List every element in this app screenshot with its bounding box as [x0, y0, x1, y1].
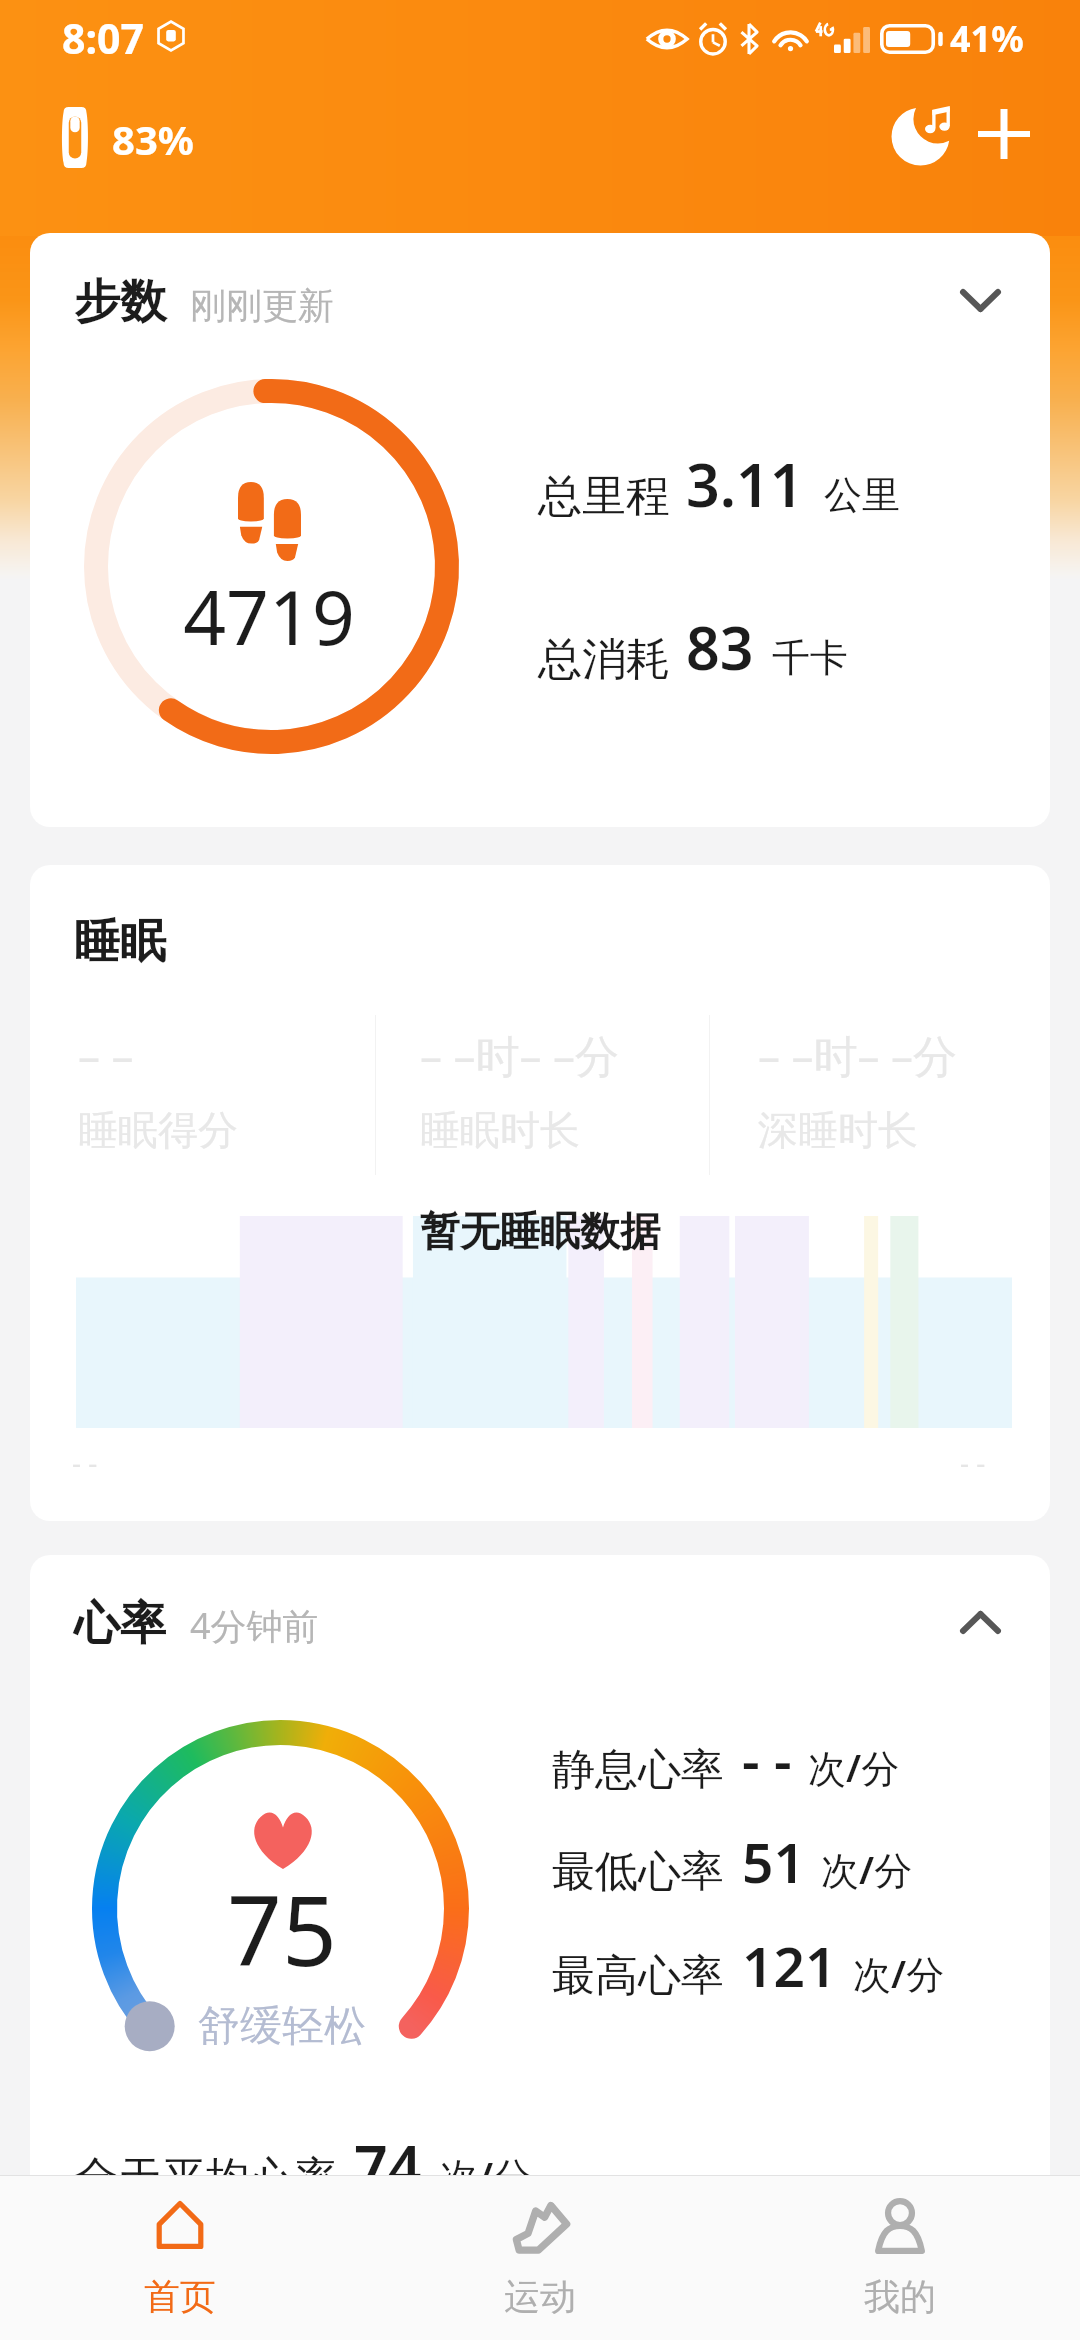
- staticText: 次/分: [853, 1947, 945, 1999]
- staticText: 步数: [74, 273, 166, 331]
- staticText: 全天平均心率: [74, 2151, 338, 2206]
- staticText: 83: [686, 607, 754, 687]
- staticText: 我的: [864, 2274, 936, 2319]
- staticText: - -: [72, 1443, 98, 1481]
- button[interactable]: Sleep sounds: [869, 92, 973, 204]
- staticText: 运动: [504, 2274, 576, 2319]
- staticText: 75: [82, 1863, 482, 1994]
- button[interactable]: 睡眠: [30, 865, 1050, 1521]
- button[interactable]: Add device: [952, 82, 1056, 186]
- staticText: 舒缓轻松: [82, 2000, 482, 2053]
- staticText: 暂无睡眠数据: [30, 1206, 1050, 1256]
- button[interactable]: 步数: [30, 233, 1050, 827]
- staticText: – –时– –分: [420, 1025, 619, 1085]
- staticText: 最低心率: [552, 1845, 724, 1899]
- staticText: 41%: [950, 14, 1024, 63]
- button[interactable]: Collapse card: [935, 1577, 1025, 1667]
- staticText: 次/分: [808, 1741, 900, 1793]
- staticText: 4719: [69, 565, 469, 667]
- staticText: 公里: [824, 471, 900, 519]
- staticText: 次/分: [440, 2149, 532, 2201]
- staticText: 4分钟前: [190, 1601, 319, 1650]
- staticText: 睡眠: [74, 913, 166, 971]
- staticText: 刚刚更新: [190, 283, 334, 328]
- staticText: 静息心率: [552, 1743, 724, 1797]
- staticText: 心率: [74, 1595, 166, 1653]
- button[interactable]: 心率: [30, 1555, 1050, 2255]
- staticText: 睡眠时长: [420, 1105, 580, 1155]
- staticText: 74: [354, 2126, 422, 2206]
- staticText: 总消耗: [538, 632, 670, 687]
- staticText: 千卡: [772, 634, 848, 682]
- button[interactable]: 运动: [360, 2176, 720, 2340]
- button[interactable]: 我的: [720, 2176, 1080, 2340]
- staticText: 3.11: [686, 444, 804, 524]
- staticText: 总里程: [538, 469, 670, 524]
- staticText: - -: [742, 1722, 792, 1797]
- staticText: 121: [742, 1928, 837, 2003]
- button[interactable]: Expand card: [935, 255, 1025, 345]
- staticText: – –: [78, 1025, 134, 1085]
- staticText: 睡眠得分: [78, 1105, 238, 1155]
- staticText: 最高心率: [552, 1949, 724, 2003]
- staticText: 51: [742, 1824, 805, 1899]
- staticText: 深睡时长: [758, 1105, 918, 1155]
- staticText: 83%: [112, 112, 194, 166]
- staticText: – –时– –分: [758, 1025, 957, 1085]
- staticText: 首页: [144, 2274, 216, 2319]
- staticText: 次/分: [821, 1843, 913, 1895]
- button[interactable]: 首页: [0, 2176, 360, 2340]
- staticText: 8:07: [62, 10, 144, 66]
- staticText: - -: [960, 1443, 986, 1481]
